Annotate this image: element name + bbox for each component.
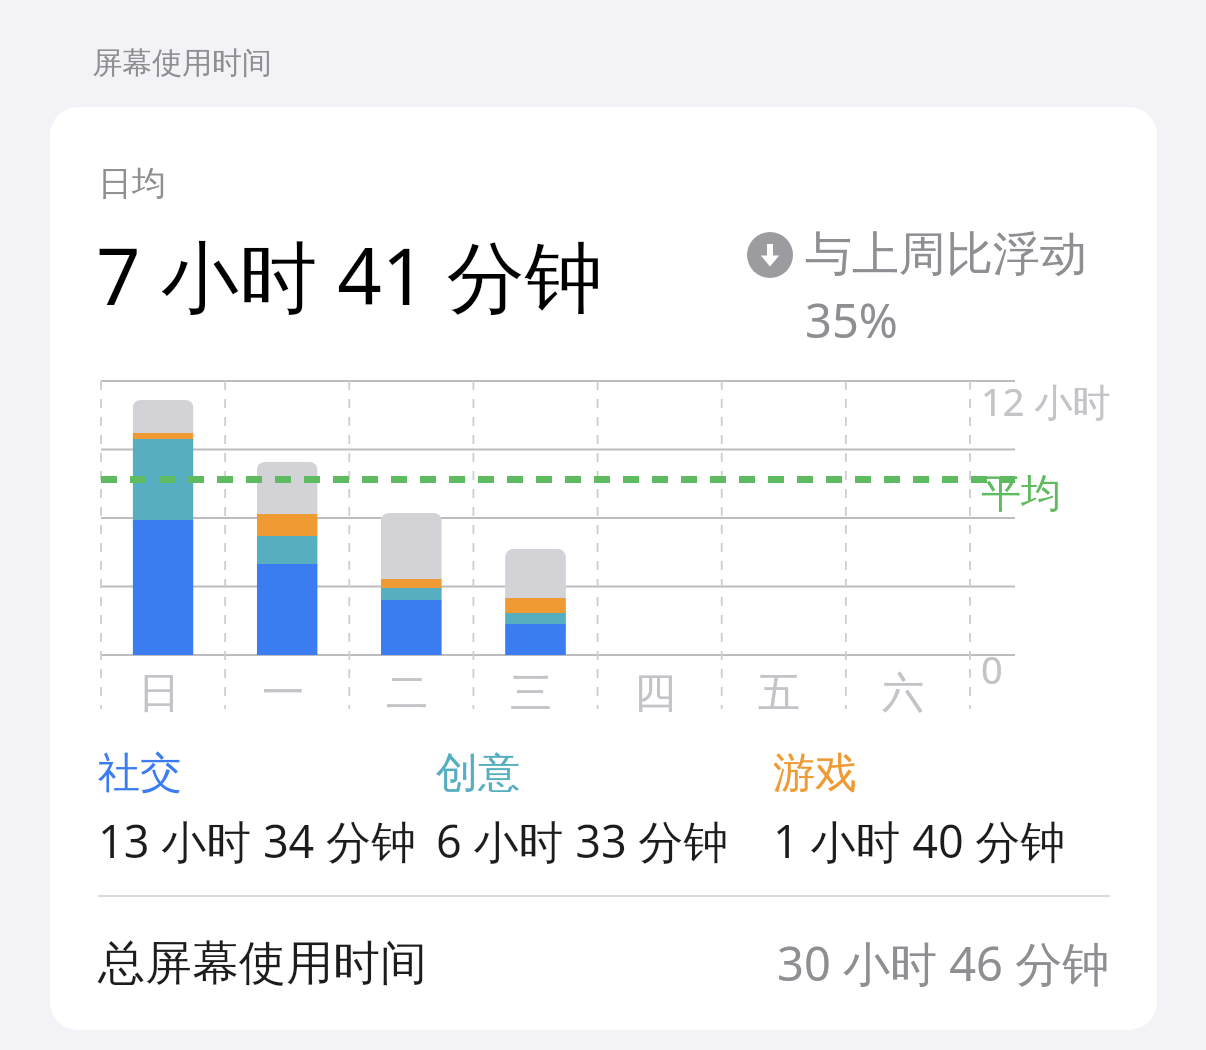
- staticText: 社交: [98, 747, 182, 800]
- staticText: 日均: [98, 162, 166, 205]
- staticText: 二: [386, 667, 428, 715]
- staticText: 30 小时 46 分钟: [777, 931, 1110, 995]
- button[interactable]: 游戏: [773, 747, 1110, 871]
- staticText: 6 小时 33 分钟: [436, 810, 729, 871]
- staticText: 屏幕使用时间: [92, 44, 272, 82]
- button[interactable]: 日均: [50, 107, 1157, 1030]
- staticText: 13 小时 34 分钟: [98, 810, 417, 871]
- staticText: 五: [758, 667, 800, 715]
- staticText: 7 小时 41 分钟: [96, 222, 603, 329]
- staticText: 日: [138, 667, 180, 715]
- staticText: 四: [634, 667, 676, 715]
- staticText: 1 小时 40 分钟: [773, 810, 1066, 871]
- button[interactable]: 创意: [436, 747, 773, 871]
- staticText: 六: [882, 667, 924, 715]
- staticText: 三: [510, 667, 552, 715]
- staticText: 35%: [805, 288, 898, 352]
- staticText: 创意: [436, 747, 520, 800]
- staticText: 游戏: [773, 747, 857, 800]
- staticText: 总屏幕使用时间: [98, 934, 427, 993]
- staticText: 12 小时: [981, 375, 1111, 427]
- staticText: 与上周比浮动: [805, 225, 1087, 284]
- staticText: 0: [981, 643, 1003, 695]
- button[interactable]: 总屏幕使用时间: [98, 919, 1110, 1007]
- staticText: 平均: [981, 468, 1061, 518]
- other: 与上周相比下降: [747, 232, 793, 278]
- button[interactable]: 社交: [98, 747, 436, 871]
- button[interactable]: 与上周相比下降: [747, 225, 1087, 352]
- staticText: 一: [262, 667, 304, 715]
